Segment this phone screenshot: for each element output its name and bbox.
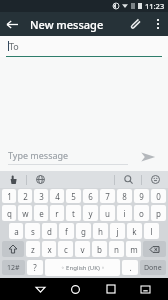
button[interactable]: z [26, 241, 40, 257]
staticText: h [98, 226, 103, 237]
button[interactable]: Back [0, 12, 24, 36]
button[interactable]: e [34, 205, 48, 221]
staticText: Type message [8, 149, 69, 161]
button[interactable] [143, 241, 166, 257]
staticText: c [64, 244, 68, 255]
button[interactable]: j [110, 223, 125, 239]
button[interactable]: h [93, 223, 108, 239]
button[interactable]: m [126, 241, 141, 257]
button[interactable]: Cursor [0, 171, 26, 188]
button[interactable]: 5 [66, 189, 81, 203]
button[interactable]: ? [27, 260, 43, 275]
staticText: . [129, 262, 132, 273]
staticText: ◦ English (UK) ◦ [61, 264, 105, 272]
staticText: 6 [88, 191, 93, 202]
button[interactable]: d [42, 223, 57, 239]
staticText: u [105, 208, 110, 219]
staticText: 11:23 [145, 1, 165, 11]
staticText: l [150, 226, 153, 237]
staticText: v [80, 244, 85, 255]
button[interactable]: Recents [93, 278, 128, 300]
button[interactable]: Type message [8, 149, 128, 165]
staticText: 7 [105, 191, 110, 202]
button[interactable]: 8 [117, 189, 132, 203]
button[interactable]: p [151, 205, 166, 221]
button[interactable]: Back [22, 278, 58, 300]
button[interactable]: 4 [50, 189, 64, 203]
staticText: Done [144, 263, 162, 273]
button[interactable]: Language [27, 171, 53, 188]
button[interactable]: i [117, 205, 132, 221]
button[interactable]: 2 [18, 189, 32, 203]
button[interactable]: s [25, 223, 40, 239]
button[interactable]: g [76, 223, 91, 239]
staticText: j [116, 226, 119, 237]
button[interactable]: y [83, 205, 98, 221]
staticText: To [9, 40, 19, 52]
staticText: 9 [139, 191, 144, 202]
button[interactable]: r [50, 205, 64, 221]
button[interactable]: Attach [124, 12, 148, 36]
button[interactable]: Emoji [142, 171, 168, 188]
staticText: f [65, 226, 68, 237]
button[interactable]: Done [140, 260, 166, 275]
staticText: 4 [55, 191, 60, 202]
button[interactable]: ◦ English (UK) ◦ [45, 259, 120, 276]
staticText: z [31, 244, 35, 255]
button[interactable]: o [134, 205, 149, 221]
staticText: m [130, 244, 138, 255]
button[interactable]: 7 [100, 189, 115, 203]
staticText: 5 [71, 191, 76, 202]
staticText: i [123, 208, 126, 219]
button[interactable]: u [100, 205, 115, 221]
button[interactable]: w [18, 205, 32, 221]
staticText: q [7, 208, 12, 219]
button[interactable]: q [2, 205, 16, 221]
staticText: a [14, 226, 19, 237]
button[interactable]: 9 [134, 189, 149, 203]
button[interactable]: 1 [2, 189, 16, 203]
staticText: r [55, 208, 59, 219]
staticText: p [156, 208, 161, 219]
button[interactable]: Search [115, 171, 141, 188]
staticText: d [47, 226, 52, 237]
staticText: e [39, 208, 44, 219]
button[interactable]: To [8, 36, 168, 56]
button[interactable]: n [109, 241, 124, 257]
staticText: n [114, 244, 119, 255]
button[interactable]: 0 [151, 189, 166, 203]
button[interactable]: 6 [83, 189, 98, 203]
button[interactable]: . [122, 260, 138, 275]
staticText: 8 [122, 191, 127, 202]
staticText: 3 [39, 191, 44, 202]
staticText: 0 [156, 191, 161, 202]
staticText: 1 [7, 191, 12, 202]
button[interactable]: Send [136, 145, 160, 169]
button[interactable]: t [66, 205, 81, 221]
staticText: New message [30, 17, 124, 32]
staticText: b [97, 244, 102, 255]
button[interactable]: 12# [2, 260, 25, 275]
button[interactable]: v [75, 241, 90, 257]
staticText: x [47, 244, 52, 255]
staticText: y [88, 208, 93, 219]
button[interactable]: c [58, 241, 73, 257]
button[interactable]: 3 [34, 189, 48, 203]
staticText: g [81, 226, 86, 237]
button[interactable]: More options [148, 14, 168, 34]
button[interactable]: b [92, 241, 107, 257]
button[interactable] [2, 241, 24, 257]
staticText: o [139, 208, 144, 219]
button[interactable]: f [59, 223, 74, 239]
button[interactable]: a [9, 223, 23, 239]
staticText: 2 [23, 191, 28, 202]
staticText: t [72, 208, 75, 219]
staticText: ? [33, 262, 37, 273]
button[interactable]: x [42, 241, 56, 257]
button[interactable]: k [127, 223, 142, 239]
staticText: s [31, 226, 35, 237]
button[interactable]: l [144, 223, 159, 239]
button[interactable]: Hide keyboard [128, 278, 163, 300]
button[interactable]: Home [58, 278, 93, 300]
staticText: w [22, 208, 29, 219]
